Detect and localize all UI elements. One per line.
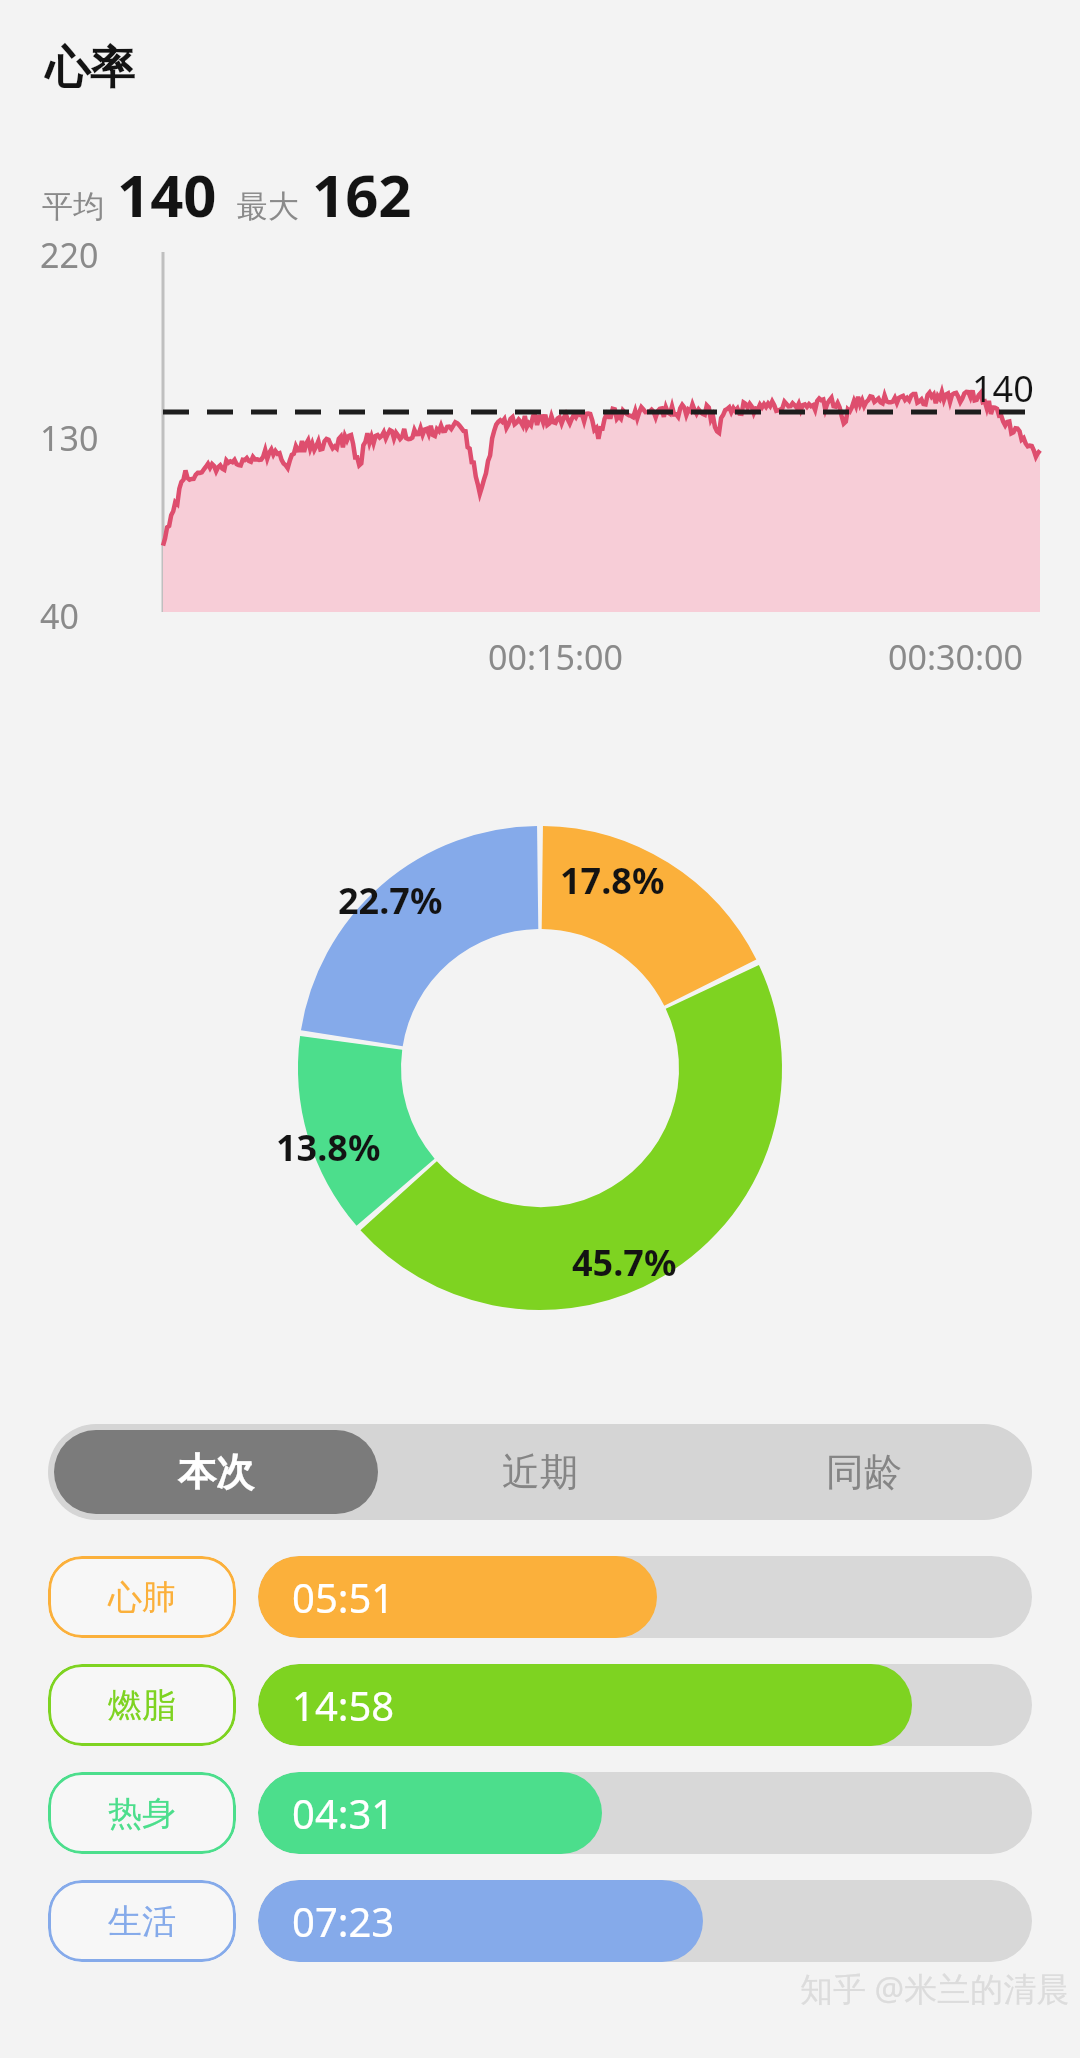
button[interactable]: 燃脂 bbox=[48, 1664, 1032, 1746]
staticText: 17.8% bbox=[560, 856, 665, 905]
staticText: 最大 bbox=[237, 187, 299, 226]
button[interactable]: 心肺 bbox=[48, 1556, 1032, 1638]
button[interactable]: 热身 bbox=[48, 1772, 1032, 1854]
staticText: 22.7% bbox=[338, 876, 443, 925]
staticText: 220 bbox=[40, 232, 99, 278]
staticText: 07:23 bbox=[292, 1894, 395, 1948]
button[interactable]: 近期 bbox=[378, 1430, 702, 1514]
staticText: 热身 bbox=[108, 1792, 176, 1835]
button[interactable]: 同龄 bbox=[702, 1430, 1026, 1514]
staticText: 13.8% bbox=[276, 1123, 381, 1172]
staticText: 本次 bbox=[178, 1448, 254, 1496]
staticText: 同龄 bbox=[826, 1448, 902, 1496]
staticText: 心率 bbox=[45, 40, 135, 97]
staticText: 14:58 bbox=[292, 1678, 395, 1732]
staticText: 心肺 bbox=[108, 1576, 176, 1619]
staticText: 04:31 bbox=[292, 1786, 395, 1840]
staticText: 生活 bbox=[108, 1900, 176, 1943]
staticText: 140 bbox=[972, 364, 1034, 413]
staticText: 40 bbox=[40, 593, 79, 639]
staticText: 140 bbox=[117, 155, 217, 234]
staticText: 近期 bbox=[502, 1448, 578, 1496]
staticText: 05:51 bbox=[292, 1570, 395, 1624]
staticText: 00:15:00 bbox=[488, 634, 623, 680]
staticText: 162 bbox=[312, 155, 412, 234]
staticText: 燃脂 bbox=[108, 1684, 176, 1727]
staticText: 130 bbox=[40, 415, 99, 461]
staticText: 00:30:00 bbox=[888, 634, 1023, 680]
button[interactable]: 生活 bbox=[48, 1880, 1032, 1962]
button[interactable]: 本次 bbox=[54, 1430, 378, 1514]
staticText: 平均 bbox=[42, 187, 104, 226]
staticText: 45.7% bbox=[572, 1238, 677, 1287]
staticText: 知乎 @米兰的清晨 bbox=[800, 1966, 1070, 2011]
